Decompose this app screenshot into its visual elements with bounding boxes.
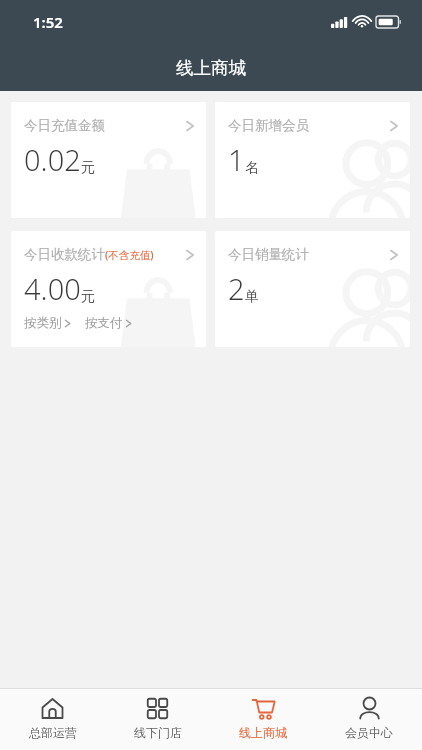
staticText: 1:52 <box>33 12 63 32</box>
button[interactable]: 今日收款统计 <box>11 231 206 347</box>
button[interactable]: 按类别 <box>24 315 71 331</box>
staticText: 线上商城 <box>176 57 246 79</box>
other: 查看详情 <box>389 247 399 263</box>
other: 查看详情 <box>389 118 399 134</box>
button[interactable]: 线下门店 <box>105 689 210 750</box>
button[interactable]: 今日新增会员 <box>215 102 410 218</box>
staticText: 总部运营 <box>29 725 77 740</box>
button[interactable]: 今日充值金额 <box>11 102 206 218</box>
button[interactable]: 按支付 <box>85 315 132 331</box>
staticText: 今日新增会员 <box>228 117 309 134</box>
staticText: 按类别 <box>24 315 62 331</box>
staticText: 今日销量统计 <box>228 246 309 263</box>
other: 查看详情 <box>185 118 195 134</box>
button[interactable]: 总部运营 <box>0 689 105 750</box>
button[interactable]: 会员中心 <box>316 689 422 750</box>
button[interactable]: 今日销量统计 <box>215 231 410 347</box>
staticText: 0.02 <box>24 140 81 179</box>
staticText: 元 <box>81 159 95 177</box>
staticText: 名 <box>245 159 259 177</box>
staticText: 线上商城 <box>239 725 287 740</box>
staticText: 4.00 <box>24 269 81 308</box>
staticText: 1 <box>228 140 245 179</box>
other: 查看详情 <box>185 247 195 263</box>
staticText: 元 <box>81 288 95 306</box>
button[interactable]: 线上商城 <box>210 689 316 750</box>
staticText: 会员中心 <box>345 725 393 740</box>
staticText: 线下门店 <box>134 725 182 740</box>
staticText: 单 <box>245 288 259 306</box>
staticText: (不含充值) <box>105 248 154 262</box>
staticText: 按支付 <box>85 315 123 331</box>
staticText: 2 <box>228 269 245 308</box>
staticText: 今日充值金额 <box>24 117 105 134</box>
staticText: 今日收款统计 <box>24 246 105 263</box>
